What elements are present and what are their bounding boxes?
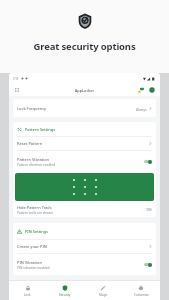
staticText: Security	[59, 293, 71, 297]
button[interactable]: Customize	[122, 281, 160, 300]
button[interactable]: Toggle on	[143, 262, 152, 267]
staticText: Always	[136, 107, 147, 111]
button[interactable]: Security	[46, 281, 84, 300]
button[interactable]: Protection status	[148, 86, 156, 94]
staticText: Lock Frequency	[17, 106, 47, 111]
button[interactable]: Reset Pattern	[13, 137, 156, 150]
button[interactable]: Menu	[13, 86, 21, 94]
staticText: Reset Pattern	[17, 141, 43, 146]
button[interactable]: Create your PIN	[13, 240, 156, 253]
staticText: Lock	[24, 293, 31, 297]
button[interactable]: Toggle on	[143, 159, 152, 164]
staticText: Pattern vibration enabled	[17, 163, 56, 167]
button[interactable]: Magic	[84, 281, 122, 300]
staticText: Magic	[99, 293, 108, 297]
staticText: PIN Vibration	[17, 260, 42, 265]
staticText: PIN Settings	[25, 229, 48, 234]
button[interactable]: Upgrade to Pro	[136, 86, 145, 95]
staticText: PIN vibration enabled	[17, 266, 50, 270]
button[interactable]: Hide Pattern Trails	[13, 202, 156, 217]
staticText: Pattern trails are shown	[17, 211, 53, 215]
staticText: Customize	[134, 293, 149, 297]
staticText: Create your PIN	[17, 244, 47, 249]
button[interactable]: Lock	[9, 281, 46, 300]
button[interactable]: Lock Frequency	[13, 99, 156, 117]
button[interactable]: Pattern Vibration	[13, 151, 156, 172]
button[interactable]: PIN Vibration	[13, 254, 156, 275]
staticText: Pattern Vibration	[17, 157, 50, 162]
staticText: Pattern Settings	[25, 127, 56, 132]
button[interactable]: Toggle off	[143, 207, 152, 212]
staticText: 7:10	[13, 77, 19, 81]
staticText: AppLocker	[9, 88, 160, 93]
staticText: Hide Pattern Trails	[17, 205, 52, 210]
staticText: Great security options	[0, 40, 169, 53]
